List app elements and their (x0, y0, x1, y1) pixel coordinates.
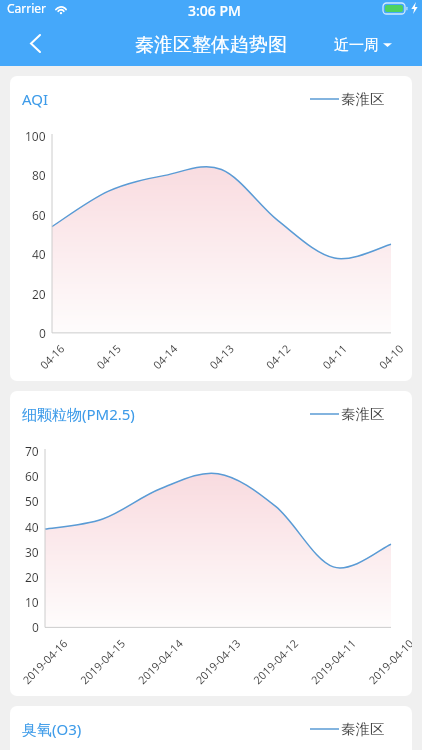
staticText: Carrier (7, 0, 47, 16)
staticText: 近一周 (334, 36, 379, 55)
button[interactable]: 近一周 (334, 24, 392, 66)
button[interactable]: Back (0, 24, 70, 66)
staticText: 秦淮区整体趋势图 (135, 33, 287, 57)
staticText: 秦淮区 (341, 90, 385, 108)
staticText: 秦淮区 (341, 720, 385, 738)
staticText: 秦淮区 (341, 405, 385, 423)
staticText: 臭氧(O3) (22, 719, 82, 739)
staticText: 3:06 PM (188, 1, 241, 20)
staticText: 细颗粒物(PM2.5) (22, 404, 135, 424)
staticText: AQI (22, 89, 49, 109)
